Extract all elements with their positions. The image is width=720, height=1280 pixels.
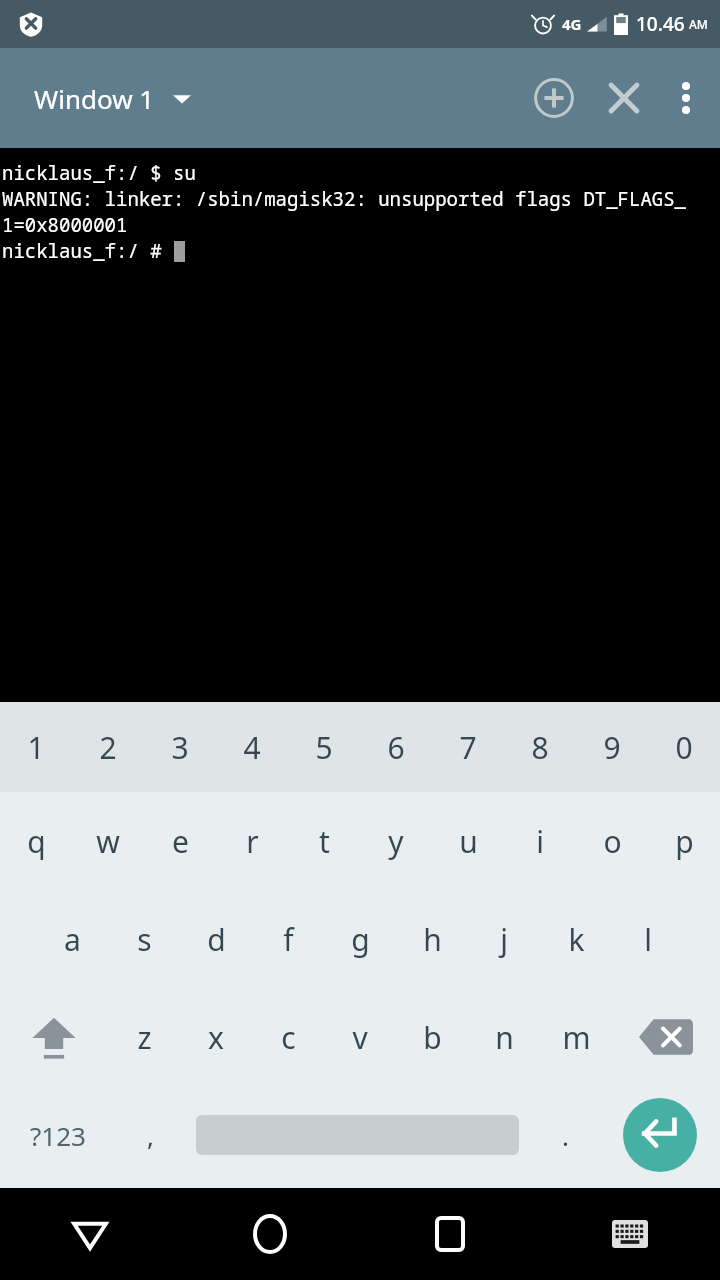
button[interactable]: nicklaus_f:/ $ su	[0, 148, 720, 702]
staticText: g	[351, 919, 370, 960]
staticText: u	[459, 821, 478, 862]
button[interactable]: 6	[360, 702, 432, 792]
button[interactable]: d	[180, 890, 252, 988]
staticText: s	[137, 919, 152, 960]
staticText: 0	[675, 727, 693, 768]
button[interactable]: n	[468, 988, 540, 1086]
button[interactable]: Back	[0, 1188, 180, 1280]
button[interactable]: r	[216, 792, 288, 890]
staticText: z	[137, 1017, 152, 1058]
staticText: 8	[531, 727, 549, 768]
staticText: k	[568, 919, 585, 960]
button[interactable]: 7	[432, 702, 504, 792]
button[interactable]: More options	[658, 70, 714, 126]
button[interactable]: v	[324, 988, 396, 1086]
staticText: c	[281, 1017, 296, 1058]
button[interactable]: Window 1	[0, 73, 203, 124]
staticText: .	[562, 1118, 569, 1153]
button[interactable]: 3	[144, 702, 216, 792]
staticText: p	[675, 821, 694, 862]
staticText: 10.46	[636, 11, 685, 37]
button[interactable]: a	[36, 890, 108, 988]
staticText: 4G	[562, 14, 582, 34]
staticText: WARNING: linker: /sbin/magisk32: unsuppo…	[2, 186, 687, 212]
staticText: nicklaus_f:/ #	[2, 238, 174, 264]
staticText: t	[319, 821, 330, 862]
staticText: n	[495, 1017, 514, 1058]
button[interactable]: j	[468, 890, 540, 988]
staticText: a	[64, 919, 81, 960]
staticText: 1=0x8000001	[2, 212, 128, 238]
button[interactable]: b	[396, 988, 468, 1086]
staticText: f	[283, 919, 294, 960]
staticText: o	[603, 821, 622, 862]
button[interactable]: Home	[180, 1188, 360, 1280]
staticText: 5	[315, 727, 333, 768]
button[interactable]: ?123	[0, 1086, 116, 1184]
button[interactable]: Enter	[599, 1086, 720, 1184]
button[interactable]: k	[540, 890, 612, 988]
button[interactable]: p	[648, 792, 720, 890]
button[interactable]: New window	[526, 70, 582, 126]
button[interactable]: s	[108, 890, 180, 988]
button[interactable]: m	[540, 988, 612, 1086]
staticText: 3	[171, 727, 189, 768]
staticText: nicklaus_f:/ $ su	[2, 160, 196, 186]
button[interactable]: w	[72, 792, 144, 890]
staticText: 9	[603, 727, 621, 768]
button[interactable]: u	[432, 792, 504, 890]
button[interactable]: 4	[216, 702, 288, 792]
button[interactable]: 8	[504, 702, 576, 792]
button[interactable]: Close window	[596, 70, 652, 126]
staticText: 7	[459, 727, 477, 768]
button[interactable]: y	[360, 792, 432, 890]
staticText: d	[207, 919, 226, 960]
button[interactable]: z	[108, 988, 180, 1086]
button[interactable]: 1	[0, 702, 72, 792]
button[interactable]: Space	[184, 1086, 531, 1184]
staticText: 1	[27, 727, 45, 768]
button[interactable]: q	[0, 792, 72, 890]
staticText: m	[562, 1017, 591, 1058]
staticText: w	[96, 821, 120, 862]
button[interactable]: x	[180, 988, 252, 1086]
button[interactable]: c	[252, 988, 324, 1086]
staticText: e	[172, 821, 189, 862]
staticText: 4	[243, 727, 261, 768]
staticText: j	[500, 919, 508, 960]
staticText: r	[246, 821, 259, 862]
staticText: Window 1	[34, 81, 155, 116]
button[interactable]: e	[144, 792, 216, 890]
staticText: b	[423, 1017, 442, 1058]
staticText: h	[423, 919, 442, 960]
staticText: x	[208, 1017, 224, 1058]
button[interactable]: Shift	[0, 988, 108, 1086]
button[interactable]: Recent apps	[360, 1188, 540, 1280]
button[interactable]: ,	[116, 1086, 184, 1184]
staticText: i	[536, 821, 544, 862]
button[interactable]: .	[531, 1086, 599, 1184]
button[interactable]: 0	[648, 702, 720, 792]
staticText: 6	[387, 727, 405, 768]
button[interactable]: i	[504, 792, 576, 890]
staticText: l	[644, 919, 652, 960]
staticText: 2	[99, 727, 117, 768]
staticText: AM	[689, 16, 708, 32]
button[interactable]: l	[612, 890, 684, 988]
staticText: ?123	[30, 1118, 86, 1153]
button[interactable]: h	[396, 890, 468, 988]
button[interactable]: t	[288, 792, 360, 890]
staticText: q	[27, 821, 46, 862]
button[interactable]: 9	[576, 702, 648, 792]
button[interactable]: g	[324, 890, 396, 988]
button[interactable]: Backspace	[612, 988, 720, 1086]
button[interactable]: 2	[72, 702, 144, 792]
button[interactable]: 5	[288, 702, 360, 792]
button[interactable]: f	[252, 890, 324, 988]
staticText: ,	[147, 1118, 154, 1153]
button[interactable]: Switch keyboard	[540, 1188, 720, 1280]
staticText: v	[352, 1017, 368, 1058]
button[interactable]: o	[576, 792, 648, 890]
staticText: y	[388, 821, 404, 862]
